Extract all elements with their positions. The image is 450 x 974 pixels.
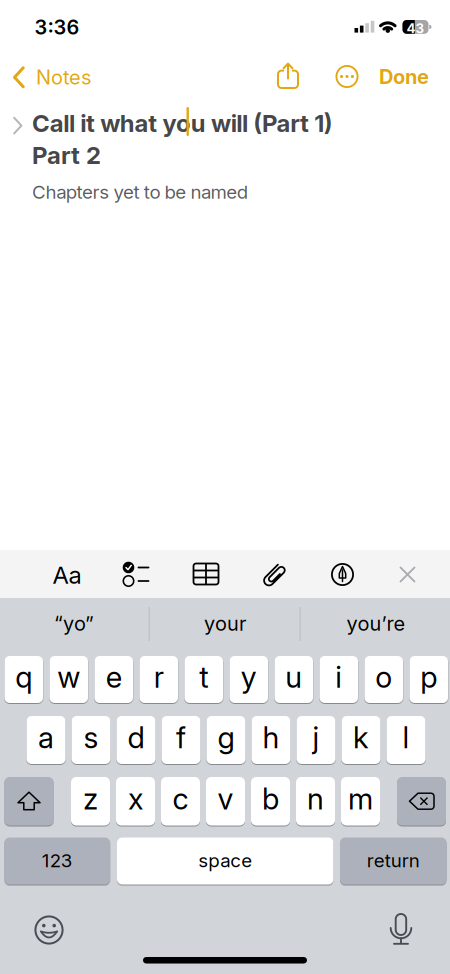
button[interactable]: v [0, 0, 39, 48]
staticText: t [199, 660, 208, 694]
button[interactable]: r [0, 0, 38, 47]
button[interactable]: d [0, 0, 39, 48]
staticText: y [241, 660, 257, 694]
button[interactable]: you’re [0, 0, 148, 36]
staticText: m [348, 781, 373, 816]
button[interactable]: 123 [0, 0, 105, 47]
staticText: your [204, 612, 246, 635]
button[interactable]: q [0, 0, 38, 47]
button[interactable]: l [0, 0, 39, 48]
staticText: Part 2 [32, 141, 101, 169]
staticText: s [83, 720, 98, 755]
button[interactable]: h [0, 0, 39, 48]
button[interactable]: p [0, 0, 38, 47]
staticText: 43 [406, 21, 424, 36]
button[interactable]: y [0, 0, 38, 47]
staticText: Notes [36, 65, 91, 89]
staticText: 123 [42, 849, 73, 871]
button[interactable]: s [0, 0, 39, 48]
button[interactable]: n [0, 0, 39, 48]
button[interactable]: “yo” [0, 0, 148, 36]
staticText: n [307, 781, 324, 816]
button[interactable]: Shift [0, 0, 49, 48]
staticText: 3:36 [34, 15, 79, 39]
staticText: f [176, 720, 186, 755]
button[interactable]: j [0, 0, 39, 48]
staticText: k [353, 720, 369, 755]
button[interactable]: u [0, 0, 38, 47]
staticText: c [172, 781, 188, 816]
staticText: Call it what you will (Part 1) [32, 109, 333, 137]
staticText: h [262, 720, 279, 755]
staticText: r [154, 660, 164, 694]
button[interactable]: z [0, 0, 39, 48]
staticText: p [420, 660, 437, 694]
staticText: Aa [52, 561, 81, 589]
button[interactable]: a [0, 0, 39, 48]
staticText: w [57, 660, 80, 694]
button[interactable]: your [0, 0, 150, 36]
button[interactable]: f [0, 0, 39, 48]
staticText: i [335, 660, 342, 694]
staticText: u [285, 660, 302, 694]
button[interactable]: return [0, 0, 106, 47]
staticText: g [217, 720, 234, 755]
button[interactable]: i [0, 0, 38, 47]
staticText: you’re [346, 612, 405, 635]
staticText: l [402, 720, 409, 755]
button[interactable]: Back [0, 0, 78, 24]
staticText: q [15, 660, 32, 694]
button[interactable]: c [0, 0, 39, 48]
staticText: d [127, 720, 144, 755]
button[interactable]: Format [0, 0, 60, 48]
button[interactable]: Delete [0, 0, 49, 48]
staticText: x [128, 781, 143, 816]
button[interactable]: x [0, 0, 39, 48]
button[interactable]: space [0, 0, 216, 47]
staticText: “yo” [54, 612, 94, 635]
staticText: e [106, 660, 122, 694]
button[interactable]: t [0, 0, 38, 47]
button[interactable]: e [0, 0, 38, 47]
staticText: return [367, 849, 420, 871]
button[interactable]: g [0, 0, 39, 48]
staticText: v [217, 781, 233, 816]
staticText: Chapters yet to be named [32, 181, 248, 203]
button[interactable]: b [0, 0, 39, 48]
staticText: o [375, 660, 392, 694]
button[interactable]: m [0, 0, 39, 48]
button[interactable]: w [0, 0, 38, 47]
button[interactable]: Done [0, 0, 70, 24]
staticText: j [312, 720, 319, 755]
button[interactable]: o [0, 0, 38, 47]
button[interactable]: k [0, 0, 39, 48]
staticText: space [198, 849, 252, 871]
staticText: b [262, 781, 279, 816]
staticText: a [38, 720, 54, 755]
staticText: Done [379, 65, 429, 89]
staticText: z [83, 781, 98, 816]
